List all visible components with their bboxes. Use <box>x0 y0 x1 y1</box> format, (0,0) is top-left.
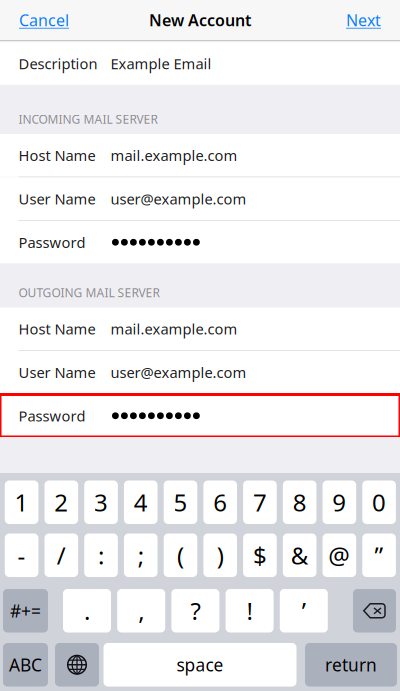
button[interactable]: Next keyboard <box>55 643 99 686</box>
staticText: ) <box>217 539 224 571</box>
button[interactable]: space <box>103 643 296 686</box>
button[interactable]: Delete <box>353 589 396 632</box>
button[interactable]: return <box>305 643 397 686</box>
staticText: Host Name <box>18 319 95 338</box>
staticText: user@example.com <box>110 189 246 208</box>
button[interactable]: ; <box>124 533 158 577</box>
staticText: #+= <box>10 599 41 622</box>
button[interactable]: ! <box>226 589 274 632</box>
staticText: ( <box>177 539 184 571</box>
staticText: 0 <box>372 486 386 518</box>
button[interactable]: - <box>5 533 38 577</box>
staticText: . <box>84 595 90 627</box>
staticText: return <box>325 653 377 676</box>
staticText: mail.example.com <box>110 319 237 338</box>
staticText: 7 <box>253 486 267 518</box>
staticText: @ <box>328 539 350 571</box>
button[interactable]: 8 <box>283 480 316 524</box>
button[interactable]: ABC <box>3 643 48 686</box>
staticText: : <box>98 539 104 571</box>
staticText: ? <box>190 595 200 627</box>
staticText: Example Email <box>110 54 211 73</box>
button[interactable]: 3 <box>84 480 118 524</box>
staticText: / <box>57 539 66 571</box>
staticText: Password <box>18 406 85 425</box>
staticText: 3 <box>94 486 108 518</box>
staticText: Description <box>18 54 97 73</box>
button[interactable]: 7 <box>243 480 277 524</box>
staticText: $ <box>253 539 267 571</box>
staticText: 6 <box>213 486 227 518</box>
staticText: 2 <box>54 486 68 518</box>
staticText: Host Name <box>18 145 95 165</box>
button[interactable]: ? <box>171 589 219 632</box>
staticText: - <box>18 539 26 571</box>
staticText: 4 <box>134 486 148 518</box>
button[interactable]: 2 <box>44 480 78 524</box>
button[interactable]: 0 <box>362 480 396 524</box>
button[interactable]: . <box>63 589 111 632</box>
staticText: Password <box>18 232 85 252</box>
staticText: ! <box>247 595 253 627</box>
button[interactable]: 1 <box>5 480 38 524</box>
staticText: , <box>138 595 144 627</box>
button[interactable]: Cancel <box>19 9 69 31</box>
staticText: space <box>176 653 223 676</box>
staticText: OUTGOING MAIL SERVER <box>18 285 159 300</box>
button[interactable]: @ <box>323 533 356 577</box>
button[interactable]: : <box>84 533 118 577</box>
staticText: ” <box>375 539 384 571</box>
staticText: User Name <box>18 362 95 382</box>
staticText: Cancel <box>19 9 69 31</box>
button[interactable]: ’ <box>280 589 328 632</box>
staticText: ABC <box>9 653 42 676</box>
staticText: 1 <box>15 486 29 518</box>
staticText: 9 <box>332 486 346 518</box>
button[interactable]: / <box>44 533 78 577</box>
button[interactable]: 9 <box>323 480 356 524</box>
staticText: user@example.com <box>110 362 246 382</box>
button[interactable]: 4 <box>124 480 158 524</box>
staticText: New Account <box>149 9 251 31</box>
staticText: & <box>291 539 309 571</box>
staticText: ; <box>138 539 144 571</box>
staticText: User Name <box>18 189 95 208</box>
button[interactable]: 6 <box>203 480 237 524</box>
button[interactable]: $ <box>243 533 277 577</box>
button[interactable]: #+= <box>3 589 48 632</box>
staticText: Next <box>346 9 381 31</box>
button[interactable]: ( <box>164 533 197 577</box>
button[interactable]: , <box>117 589 165 632</box>
button[interactable]: Next <box>346 9 381 31</box>
button[interactable]: 5 <box>164 480 197 524</box>
staticText: mail.example.com <box>110 145 237 165</box>
button[interactable]: & <box>283 533 316 577</box>
staticText: INCOMING MAIL SERVER <box>18 111 157 127</box>
staticText: 5 <box>173 486 187 518</box>
staticText: ’ <box>302 595 306 627</box>
button[interactable]: ” <box>362 533 396 577</box>
button[interactable]: ) <box>203 533 237 577</box>
staticText: 8 <box>293 486 307 518</box>
